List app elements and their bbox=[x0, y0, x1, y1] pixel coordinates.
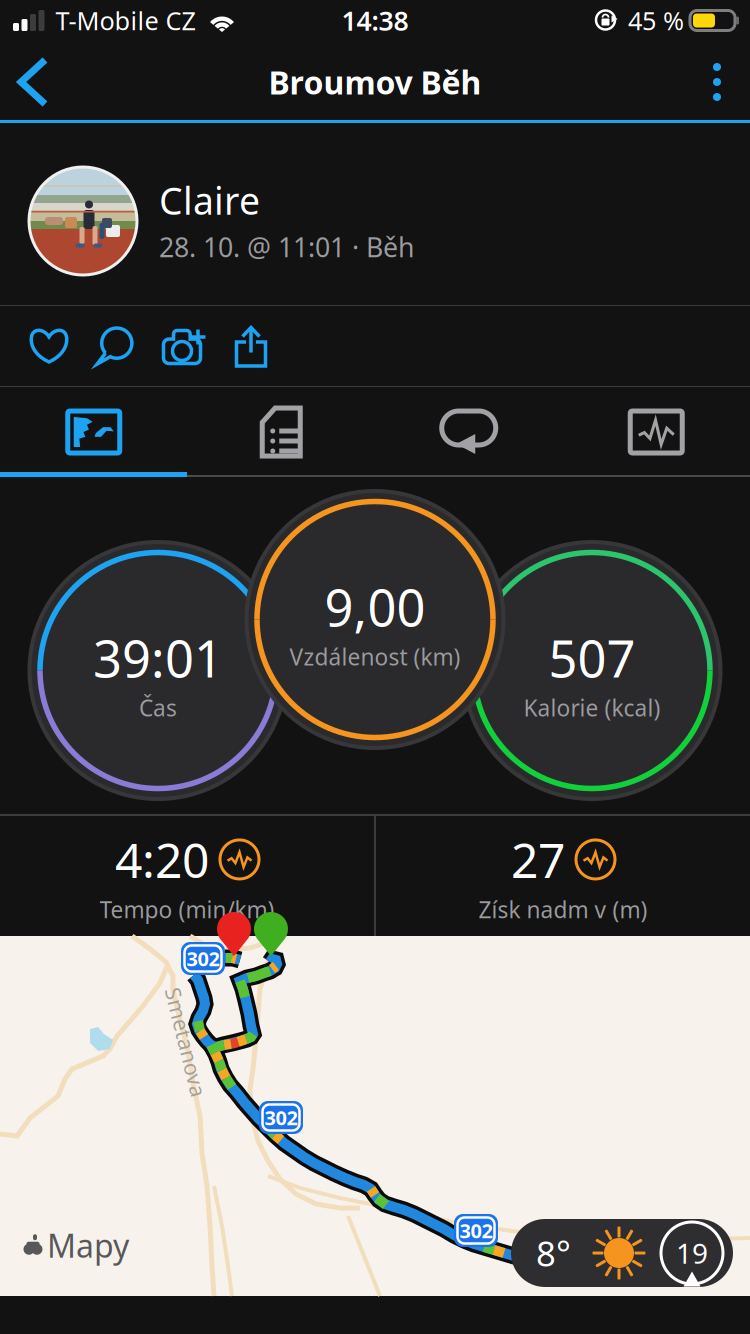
staticText: 14:38 bbox=[341, 3, 408, 38]
staticText: T-Mobile CZ bbox=[55, 4, 195, 37]
staticText: Získ nadm v (m) bbox=[478, 894, 647, 924]
staticText: 27 bbox=[511, 828, 565, 891]
button[interactable]: Back bbox=[0, 43, 72, 121]
staticText: 45 % bbox=[628, 4, 684, 37]
staticText: 507 bbox=[548, 624, 635, 692]
staticText: Broumov Běh bbox=[268, 61, 481, 103]
staticText: Mapy bbox=[47, 1224, 129, 1266]
button[interactable]: Map bbox=[0, 388, 187, 476]
staticText: Claire bbox=[159, 175, 260, 225]
button[interactable]: Charts bbox=[562, 388, 750, 476]
staticText: 39:01 bbox=[93, 624, 223, 692]
staticText: Čas bbox=[139, 693, 177, 723]
staticText: 4:20 bbox=[115, 828, 209, 891]
button[interactable]: Share bbox=[219, 306, 283, 385]
staticText: Smetanova bbox=[130, 1028, 242, 1056]
staticText: 19 bbox=[676, 1234, 708, 1272]
staticText: 9,00 bbox=[324, 573, 425, 641]
staticText: 28. 10. @ 11:01 · Běh bbox=[159, 229, 414, 264]
button[interactable]: Claire profile photo bbox=[29, 160, 137, 268]
staticText: 302 bbox=[186, 945, 219, 972]
staticText: 302 bbox=[264, 1104, 297, 1131]
staticText: 8° bbox=[536, 1230, 571, 1276]
button[interactable]: Comment bbox=[81, 306, 149, 385]
button[interactable]: Details bbox=[187, 388, 375, 476]
staticText: Vzdálenost (km) bbox=[289, 642, 460, 672]
button[interactable]: Laps bbox=[375, 388, 562, 476]
button[interactable]: More options bbox=[684, 46, 750, 118]
button[interactable]: Like bbox=[17, 306, 81, 385]
staticText: Tempo (min/km) bbox=[99, 894, 274, 924]
staticText: Kalorie (kcal) bbox=[523, 693, 660, 723]
staticText: 302 bbox=[459, 1217, 492, 1244]
button[interactable]: Add photo bbox=[149, 306, 219, 385]
